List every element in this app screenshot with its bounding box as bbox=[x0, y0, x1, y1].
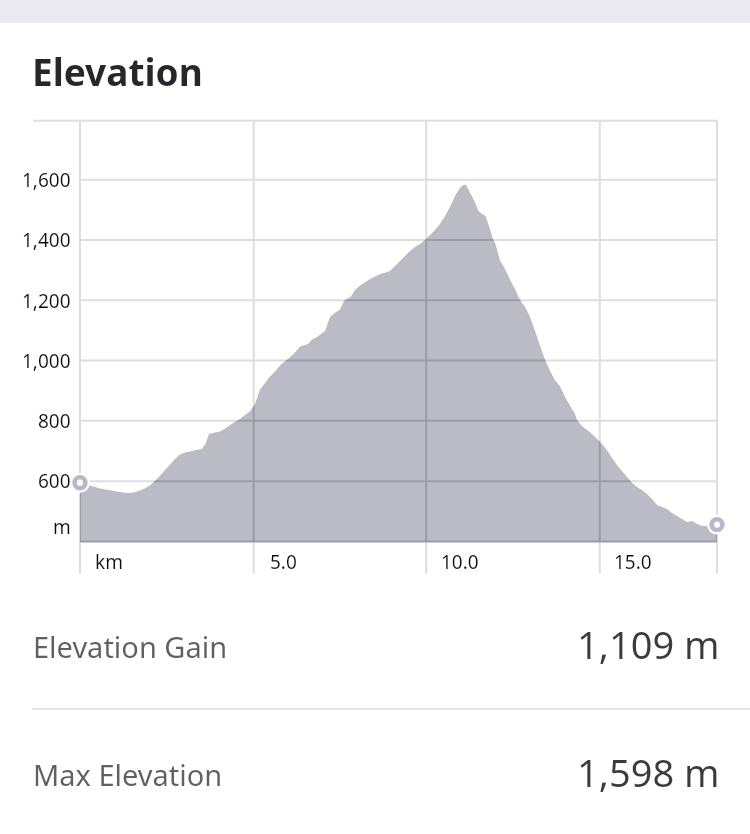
staticText: 1,598 m bbox=[577, 746, 720, 798]
staticText: 10.0 bbox=[441, 549, 479, 575]
staticText: m bbox=[53, 514, 71, 540]
staticText: 15.0 bbox=[614, 549, 652, 575]
staticText: 600 bbox=[38, 468, 71, 494]
staticText: 1,200 bbox=[22, 288, 71, 314]
staticText: 1,000 bbox=[22, 348, 71, 374]
button[interactable]: Elevation Gain bbox=[0, 596, 750, 696]
staticText: km bbox=[95, 549, 123, 575]
staticText: 5.0 bbox=[270, 549, 297, 575]
staticText: 1,600 bbox=[22, 167, 71, 193]
other: Elevation profile chart bbox=[0, 0, 750, 834]
button[interactable]: Max Elevation bbox=[0, 724, 750, 824]
staticText: 1,400 bbox=[22, 227, 71, 253]
staticText: Max Elevation bbox=[33, 755, 223, 794]
staticText: 800 bbox=[38, 408, 71, 434]
staticText: Elevation Gain bbox=[33, 627, 228, 666]
staticText: 1,109 m bbox=[577, 618, 720, 670]
staticText: Elevation bbox=[32, 46, 203, 96]
